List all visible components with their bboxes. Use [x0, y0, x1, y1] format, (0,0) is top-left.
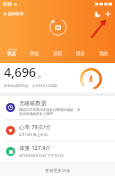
button[interactable]: 发现 [46, 48, 69, 57]
button[interactable]: 添加设备 [2, 10, 25, 17]
staticText: 6:26 [3, 1, 12, 7]
staticText: 训练 [30, 51, 40, 57]
staticText: 2019年04月16日 下午10:15 [19, 153, 64, 158]
staticText: 心率 79次/分 [19, 123, 51, 131]
button[interactable]: Device [49, 18, 67, 36]
staticText: 发现 [53, 51, 63, 57]
button[interactable]: 训练 [23, 48, 46, 57]
button[interactable]: Night mode [93, 9, 102, 18]
staticText: 我的 [99, 51, 109, 57]
button[interactable]: 设备 [69, 48, 92, 57]
button[interactable]: 心率 79次/分 [0, 120, 115, 140]
button[interactable]: 无睡眠数据 [0, 96, 115, 119]
button[interactable]: 状态 [0, 48, 23, 57]
staticText: 状态 [7, 51, 17, 57]
staticText: 设备 [76, 51, 86, 57]
staticText: 添加设备 [8, 11, 24, 16]
staticText: 4,696 [4, 64, 37, 81]
staticText: 无睡眠数据 [19, 100, 47, 107]
staticText: 4月16日 晚上8:36 [19, 132, 48, 137]
button[interactable]: 体重 127.9斤 [0, 141, 115, 161]
button[interactable]: Add [103, 9, 112, 18]
staticText: 睡眠记录需要你的设备在睡眠时佩戴，请尝试着佩戴设备入睡吧 [19, 108, 81, 116]
staticText: 体重 127.9斤 [19, 144, 52, 152]
staticText: 步 [38, 75, 42, 79]
staticText: 查看更多记录 [45, 168, 71, 173]
button[interactable]: 我的 [92, 48, 115, 57]
button[interactable]: 查看更多记录 [0, 164, 115, 176]
staticText: 目标达成8000步，今日已走1,064米 [4, 83, 58, 88]
